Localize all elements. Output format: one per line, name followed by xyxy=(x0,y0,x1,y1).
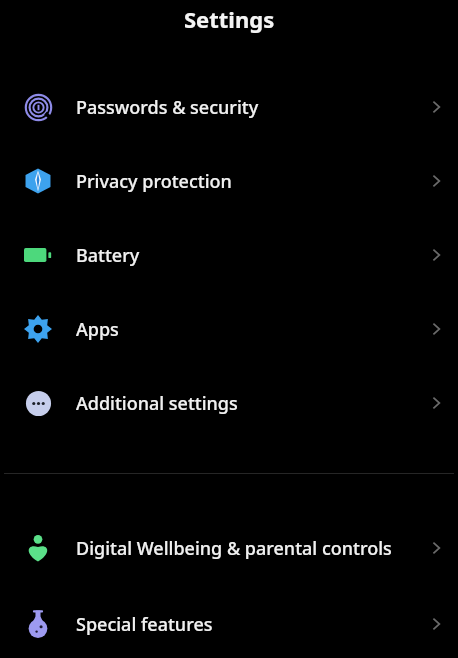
other: Open Special features xyxy=(414,614,458,634)
other: Open Digital Wellbeing & parental contro… xyxy=(414,538,458,558)
other: Open Privacy protection xyxy=(414,171,458,191)
staticText: Settings xyxy=(184,4,275,34)
other: Open Passwords & security xyxy=(414,97,458,117)
other: Open Battery xyxy=(414,245,458,265)
button[interactable]: Digital Wellbeing & parental controls xyxy=(0,506,458,590)
staticText: Privacy protection xyxy=(76,169,232,194)
staticText: Apps xyxy=(76,317,119,342)
other: Open Additional settings xyxy=(414,393,458,413)
staticText: Passwords & security xyxy=(76,95,259,120)
other: Open Apps xyxy=(414,319,458,339)
button[interactable]: Apps xyxy=(0,292,458,366)
staticText: Battery xyxy=(76,243,140,268)
button[interactable]: Passwords & security xyxy=(0,70,458,144)
button[interactable]: Battery xyxy=(0,218,458,292)
button[interactable]: Additional settings xyxy=(0,366,458,440)
staticText: Digital Wellbeing & parental controls xyxy=(76,536,392,561)
button[interactable]: Privacy protection xyxy=(0,144,458,218)
staticText: Additional settings xyxy=(76,391,238,416)
staticText: Special features xyxy=(76,612,213,637)
button[interactable]: Special features xyxy=(0,590,458,658)
